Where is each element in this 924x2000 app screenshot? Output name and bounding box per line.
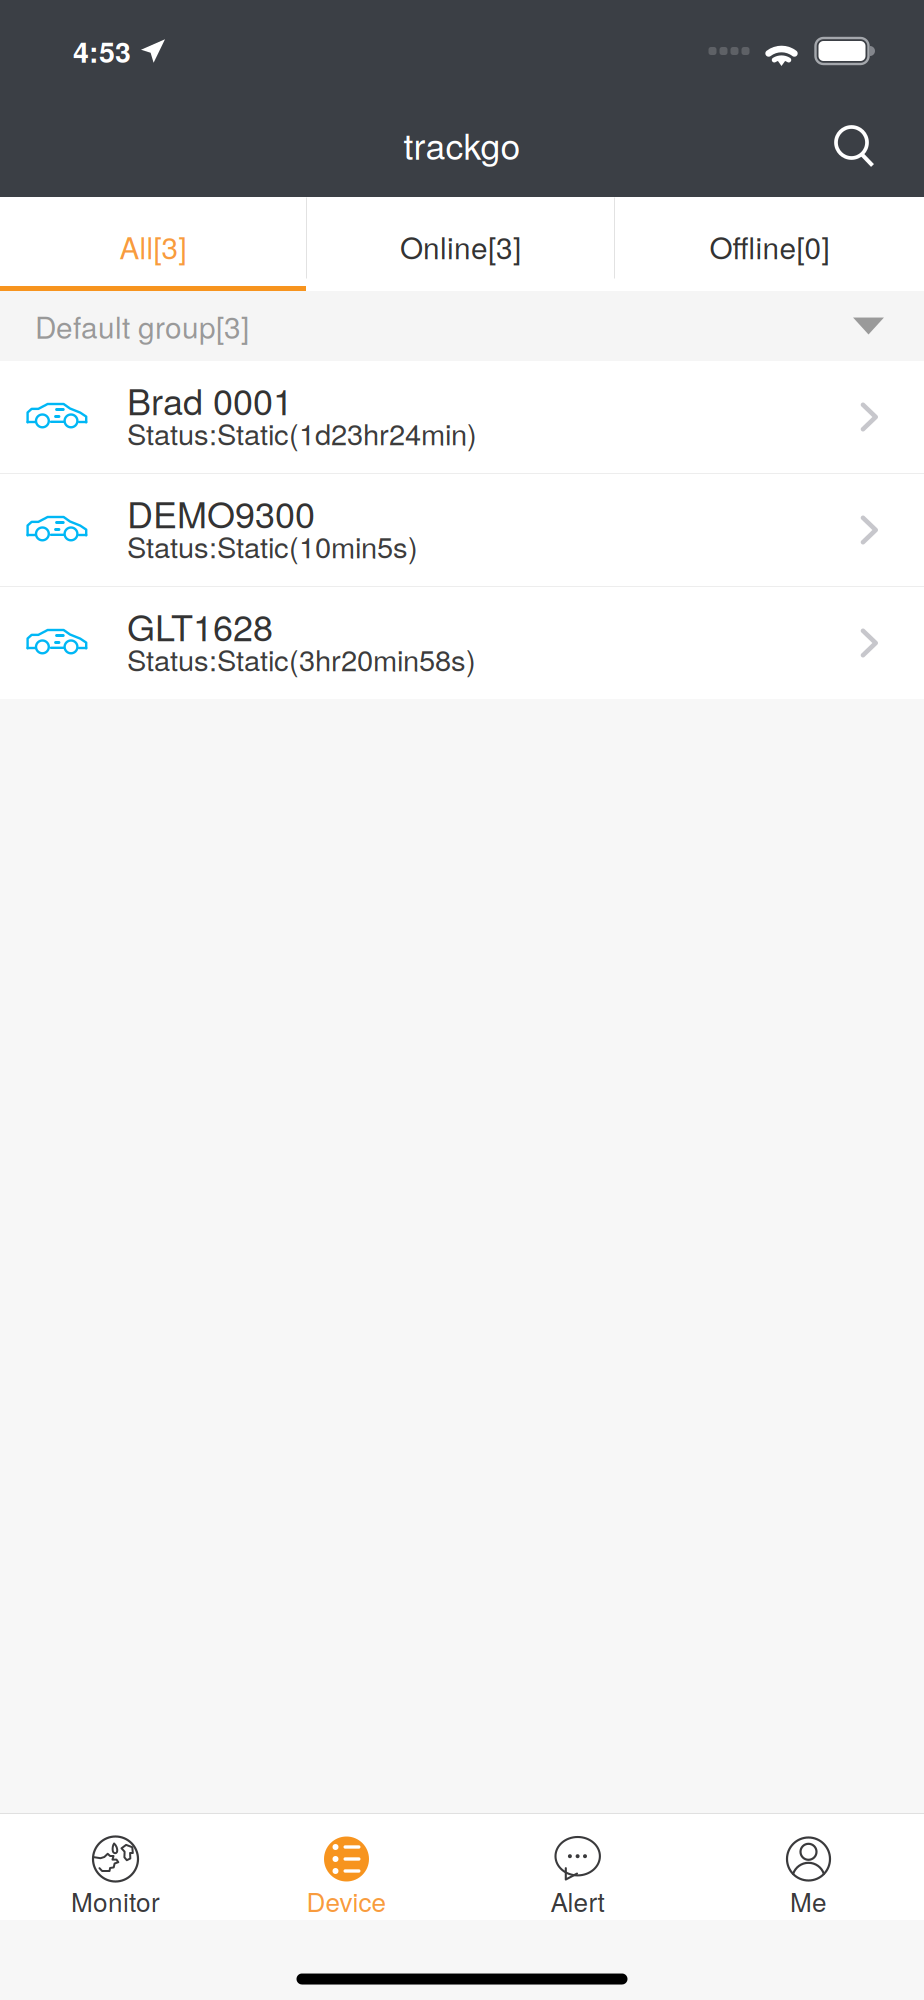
button[interactable]: Alert: [462, 1814, 693, 1920]
staticText: All[3]: [119, 225, 186, 268]
staticText: Offline[0]: [709, 225, 829, 268]
button[interactable]: All[3]: [0, 197, 306, 291]
staticText: Status:Static(3hr20min58s): [127, 638, 476, 680]
button[interactable]: GLT1628: [0, 587, 924, 699]
staticText: Brad 0001: [127, 374, 293, 426]
staticText: Monitor: [71, 1882, 160, 1919]
staticText: Status:Static(10min5s): [127, 525, 418, 567]
button[interactable]: Monitor: [0, 1814, 231, 1920]
staticText: Me: [790, 1882, 827, 1919]
staticText: Default group[3]: [35, 305, 249, 347]
button[interactable]: Default group[3]: [0, 291, 924, 361]
staticText: DEMO9300: [127, 487, 315, 539]
button[interactable]: Offline[0]: [615, 197, 924, 291]
staticText: 4:53: [73, 31, 131, 71]
button[interactable]: Search: [801, 100, 911, 197]
button[interactable]: DEMO9300: [0, 474, 924, 586]
staticText: GLT1628: [127, 600, 273, 652]
staticText: Device: [306, 1882, 386, 1919]
button[interactable]: Device: [231, 1814, 462, 1920]
button[interactable]: Online[3]: [307, 197, 614, 291]
staticText: Online[3]: [400, 225, 521, 268]
button[interactable]: Brad 0001: [0, 361, 924, 473]
staticText: Alert: [550, 1882, 604, 1919]
staticText: Status:Static(1d23hr24min): [127, 412, 477, 454]
button[interactable]: Me: [693, 1814, 924, 1920]
staticText: trackgo: [403, 119, 520, 170]
